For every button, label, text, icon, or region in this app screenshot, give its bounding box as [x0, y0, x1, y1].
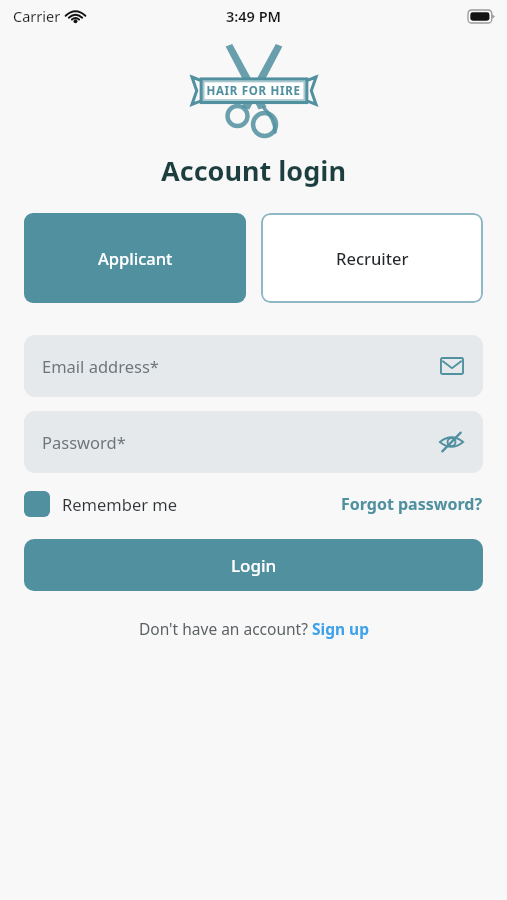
button[interactable]: Email address*: [24, 335, 483, 397]
staticText: Sign up: [312, 618, 369, 639]
button[interactable]: Login: [24, 539, 483, 591]
staticText: Forgot password?: [341, 493, 483, 515]
staticText: 3:49 PM: [226, 6, 282, 26]
staticText: Carrier: [13, 6, 61, 26]
other: Show password: [437, 428, 465, 456]
staticText: Don't have an account?: [139, 618, 312, 639]
staticText: Password*: [42, 431, 437, 453]
staticText: Account login: [0, 152, 507, 189]
staticText: Applicant: [98, 247, 173, 269]
button[interactable]: Remember me: [24, 491, 178, 517]
button[interactable]: Applicant: [24, 213, 246, 303]
staticText: HAIR FOR HIRE: [206, 83, 301, 99]
staticText: Remember me: [62, 493, 178, 515]
other: Email: [439, 353, 465, 379]
staticText: Email address*: [42, 355, 439, 377]
staticText: Recruiter: [336, 247, 409, 269]
staticText: Login: [231, 554, 277, 577]
button[interactable]: Password*: [24, 411, 483, 473]
button[interactable]: Sign up: [312, 618, 369, 639]
button[interactable]: Forgot password?: [341, 493, 483, 515]
button[interactable]: Recruiter: [261, 213, 483, 303]
